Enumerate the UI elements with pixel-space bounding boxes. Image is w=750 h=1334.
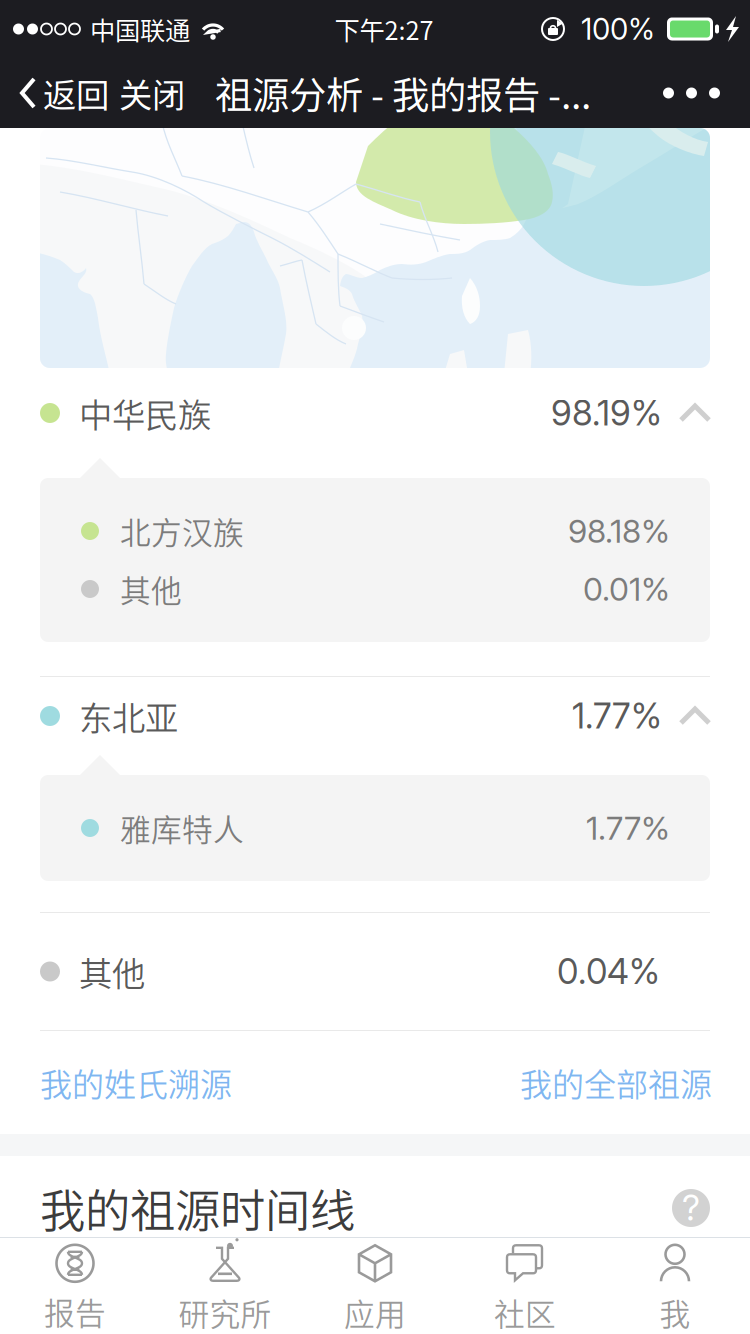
staticText: 98.19%	[551, 392, 662, 434]
button[interactable]: 我	[600, 1237, 750, 1334]
button[interactable]: 我的姓氏溯源	[40, 1031, 232, 1134]
staticText: 祖源分析 - 我的报告 -...	[215, 66, 591, 120]
staticText: 下午2:27	[334, 11, 433, 47]
staticText: 98.18%	[568, 512, 670, 550]
button[interactable]: 应用	[300, 1237, 450, 1334]
button[interactable]: 其他	[0, 913, 750, 1030]
staticText: 100%	[581, 11, 655, 47]
staticText: 其他	[120, 567, 182, 611]
staticText: ?	[682, 1187, 700, 1229]
staticText: 其他	[79, 947, 145, 996]
button[interactable]: 社区	[450, 1237, 600, 1334]
staticText: 研究所	[178, 1290, 271, 1334]
button[interactable]: 返回	[18, 51, 109, 135]
staticText: 报告	[44, 1289, 106, 1334]
button[interactable]: 东北亚	[0, 677, 750, 755]
staticText: 我	[659, 1290, 690, 1334]
staticText: 我的姓氏溯源	[40, 1059, 232, 1106]
staticText: 我的全部祖源	[520, 1059, 712, 1106]
button[interactable]: 报告	[0, 1237, 150, 1334]
button[interactable]: 帮助	[672, 1187, 710, 1229]
staticText: 返回	[43, 69, 109, 117]
staticText: 1.77%	[586, 809, 670, 847]
staticText: 社区	[494, 1290, 556, 1334]
button[interactable]: 更多	[647, 65, 736, 120]
staticText: 雅库特人	[120, 806, 244, 850]
button[interactable]: 中华民族	[0, 368, 750, 458]
button[interactable]: 研究所	[150, 1237, 300, 1334]
staticText: 中国联通	[90, 11, 190, 47]
staticText: 北方汉族	[120, 509, 244, 553]
staticText: 关闭	[119, 69, 185, 117]
staticText: 0.01%	[583, 570, 670, 608]
staticText: 东北亚	[79, 692, 178, 740]
button[interactable]: 关闭	[109, 51, 195, 135]
staticText: 0.04%	[557, 950, 660, 992]
staticText: 中华民族	[79, 389, 211, 437]
staticText: 1.77%	[572, 695, 662, 737]
staticText: 我的祖源时间线	[40, 1175, 355, 1241]
button[interactable]: 我的全部祖源	[520, 1031, 712, 1134]
staticText: 应用	[344, 1290, 406, 1334]
